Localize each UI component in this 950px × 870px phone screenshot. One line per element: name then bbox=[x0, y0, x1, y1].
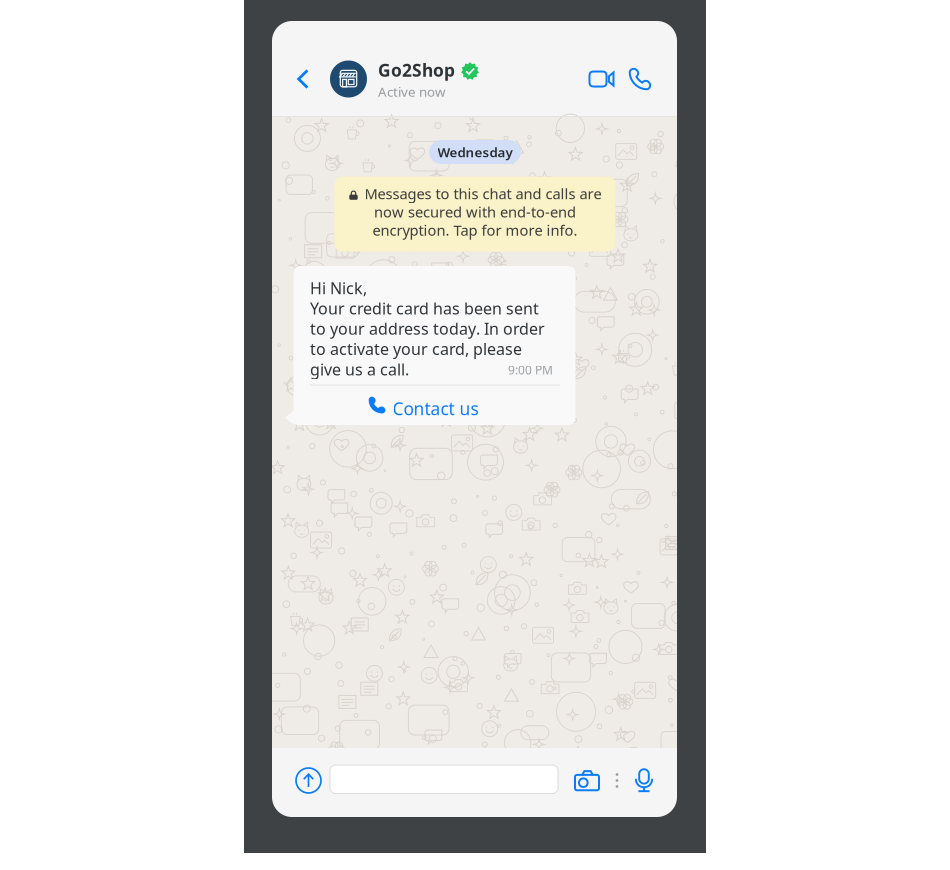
button[interactable]: Video call bbox=[584, 57, 620, 101]
staticText: Your credit card has been sent bbox=[310, 298, 539, 319]
staticText: Active now bbox=[378, 83, 445, 100]
button[interactable]: Voice message bbox=[630, 765, 658, 795]
button[interactable]: Back bbox=[286, 57, 320, 101]
staticText: encryption. Tap for more info. bbox=[372, 220, 577, 240]
staticText: to your address today. In order bbox=[310, 318, 545, 339]
staticText: Contact us bbox=[392, 397, 478, 420]
staticText: Wednesday bbox=[437, 143, 512, 161]
button[interactable]: Messages to this chat and calls are bbox=[334, 176, 615, 251]
staticText: Messages to this chat and calls are bbox=[364, 184, 601, 203]
button[interactable]: Attach bbox=[293, 765, 323, 795]
button[interactable]: Contact us bbox=[294, 386, 575, 424]
staticText: Go2Shop bbox=[378, 59, 455, 82]
staticText: Hi Nick, bbox=[310, 277, 367, 299]
staticText: now secured with end-to-end bbox=[374, 202, 576, 222]
button[interactable]: Voice call bbox=[622, 57, 658, 101]
staticText: to activate your card, please bbox=[310, 338, 522, 359]
button[interactable]: More options bbox=[610, 765, 624, 795]
staticText: give us a call. bbox=[310, 359, 409, 380]
staticText: 9:00 PM bbox=[508, 362, 553, 378]
button[interactable]: Go2Shop bbox=[330, 57, 479, 101]
button[interactable]: Camera bbox=[574, 765, 602, 795]
